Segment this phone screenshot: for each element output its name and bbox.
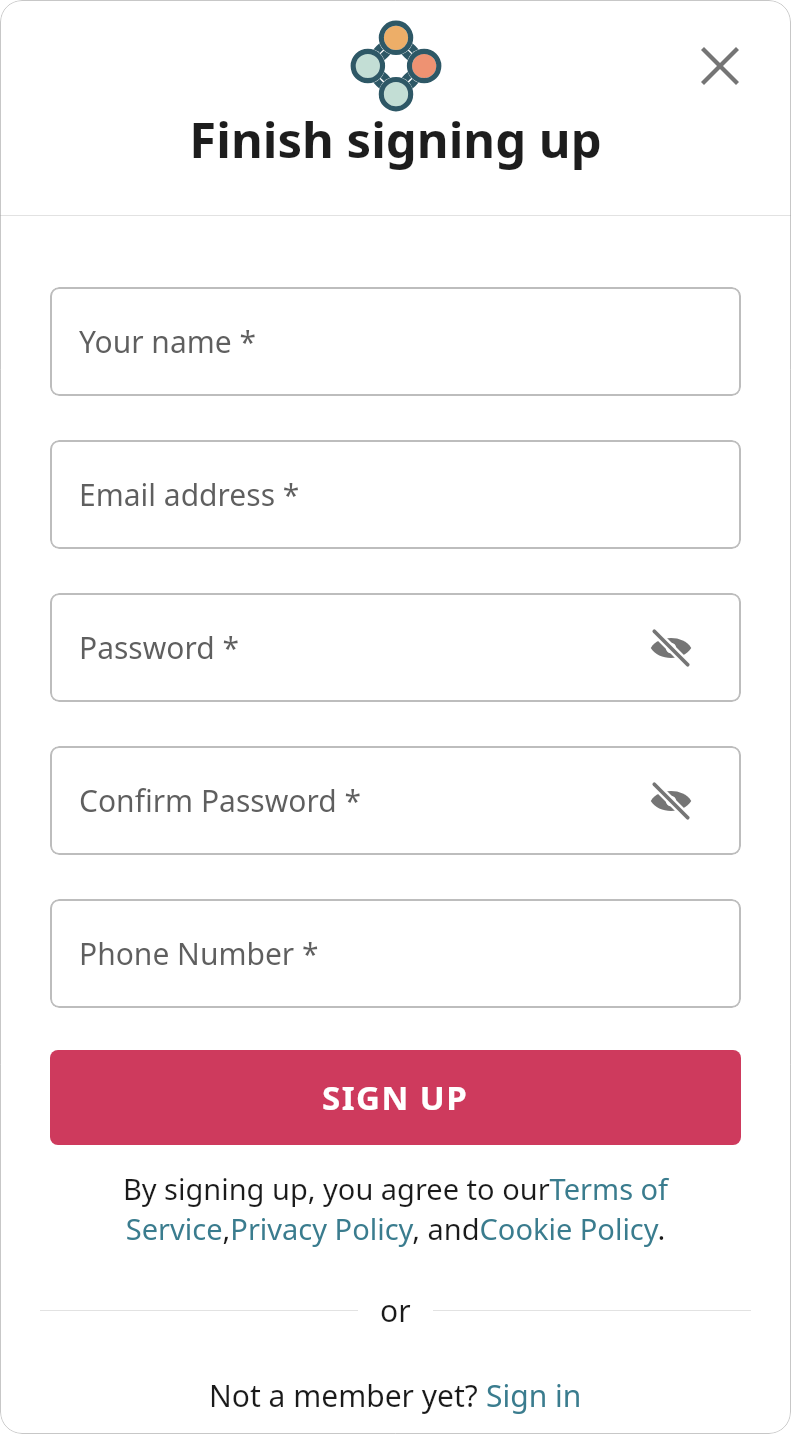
staticText: Not a member yet? xyxy=(209,1375,486,1416)
button[interactable]: SIGN UP xyxy=(50,1050,741,1145)
button[interactable]: Email address * xyxy=(50,440,741,549)
button[interactable]: Close xyxy=(690,36,750,96)
staticText: Confirm Password * xyxy=(79,780,361,821)
button[interactable]: Show password xyxy=(645,775,697,827)
staticText: Password * xyxy=(79,627,240,668)
button[interactable]: Password * xyxy=(50,593,741,702)
staticText: By signing up, you agree to ourTerms of … xyxy=(50,1169,741,1249)
button[interactable]: Confirm Password * xyxy=(50,746,741,855)
staticText: SIGN UP xyxy=(322,1075,469,1120)
staticText: Sign in xyxy=(486,1375,582,1416)
staticText: Phone Number * xyxy=(79,933,319,974)
button[interactable]: Your name * xyxy=(50,287,741,396)
staticText: Finish signing up xyxy=(189,106,602,173)
button[interactable]: Phone Number * xyxy=(50,899,741,1008)
button[interactable]: Show password xyxy=(645,622,697,674)
staticText: or xyxy=(380,1290,411,1331)
button[interactable]: Sign in xyxy=(486,1375,582,1416)
staticText: Email address * xyxy=(79,474,300,515)
staticText: Your name * xyxy=(79,321,257,362)
